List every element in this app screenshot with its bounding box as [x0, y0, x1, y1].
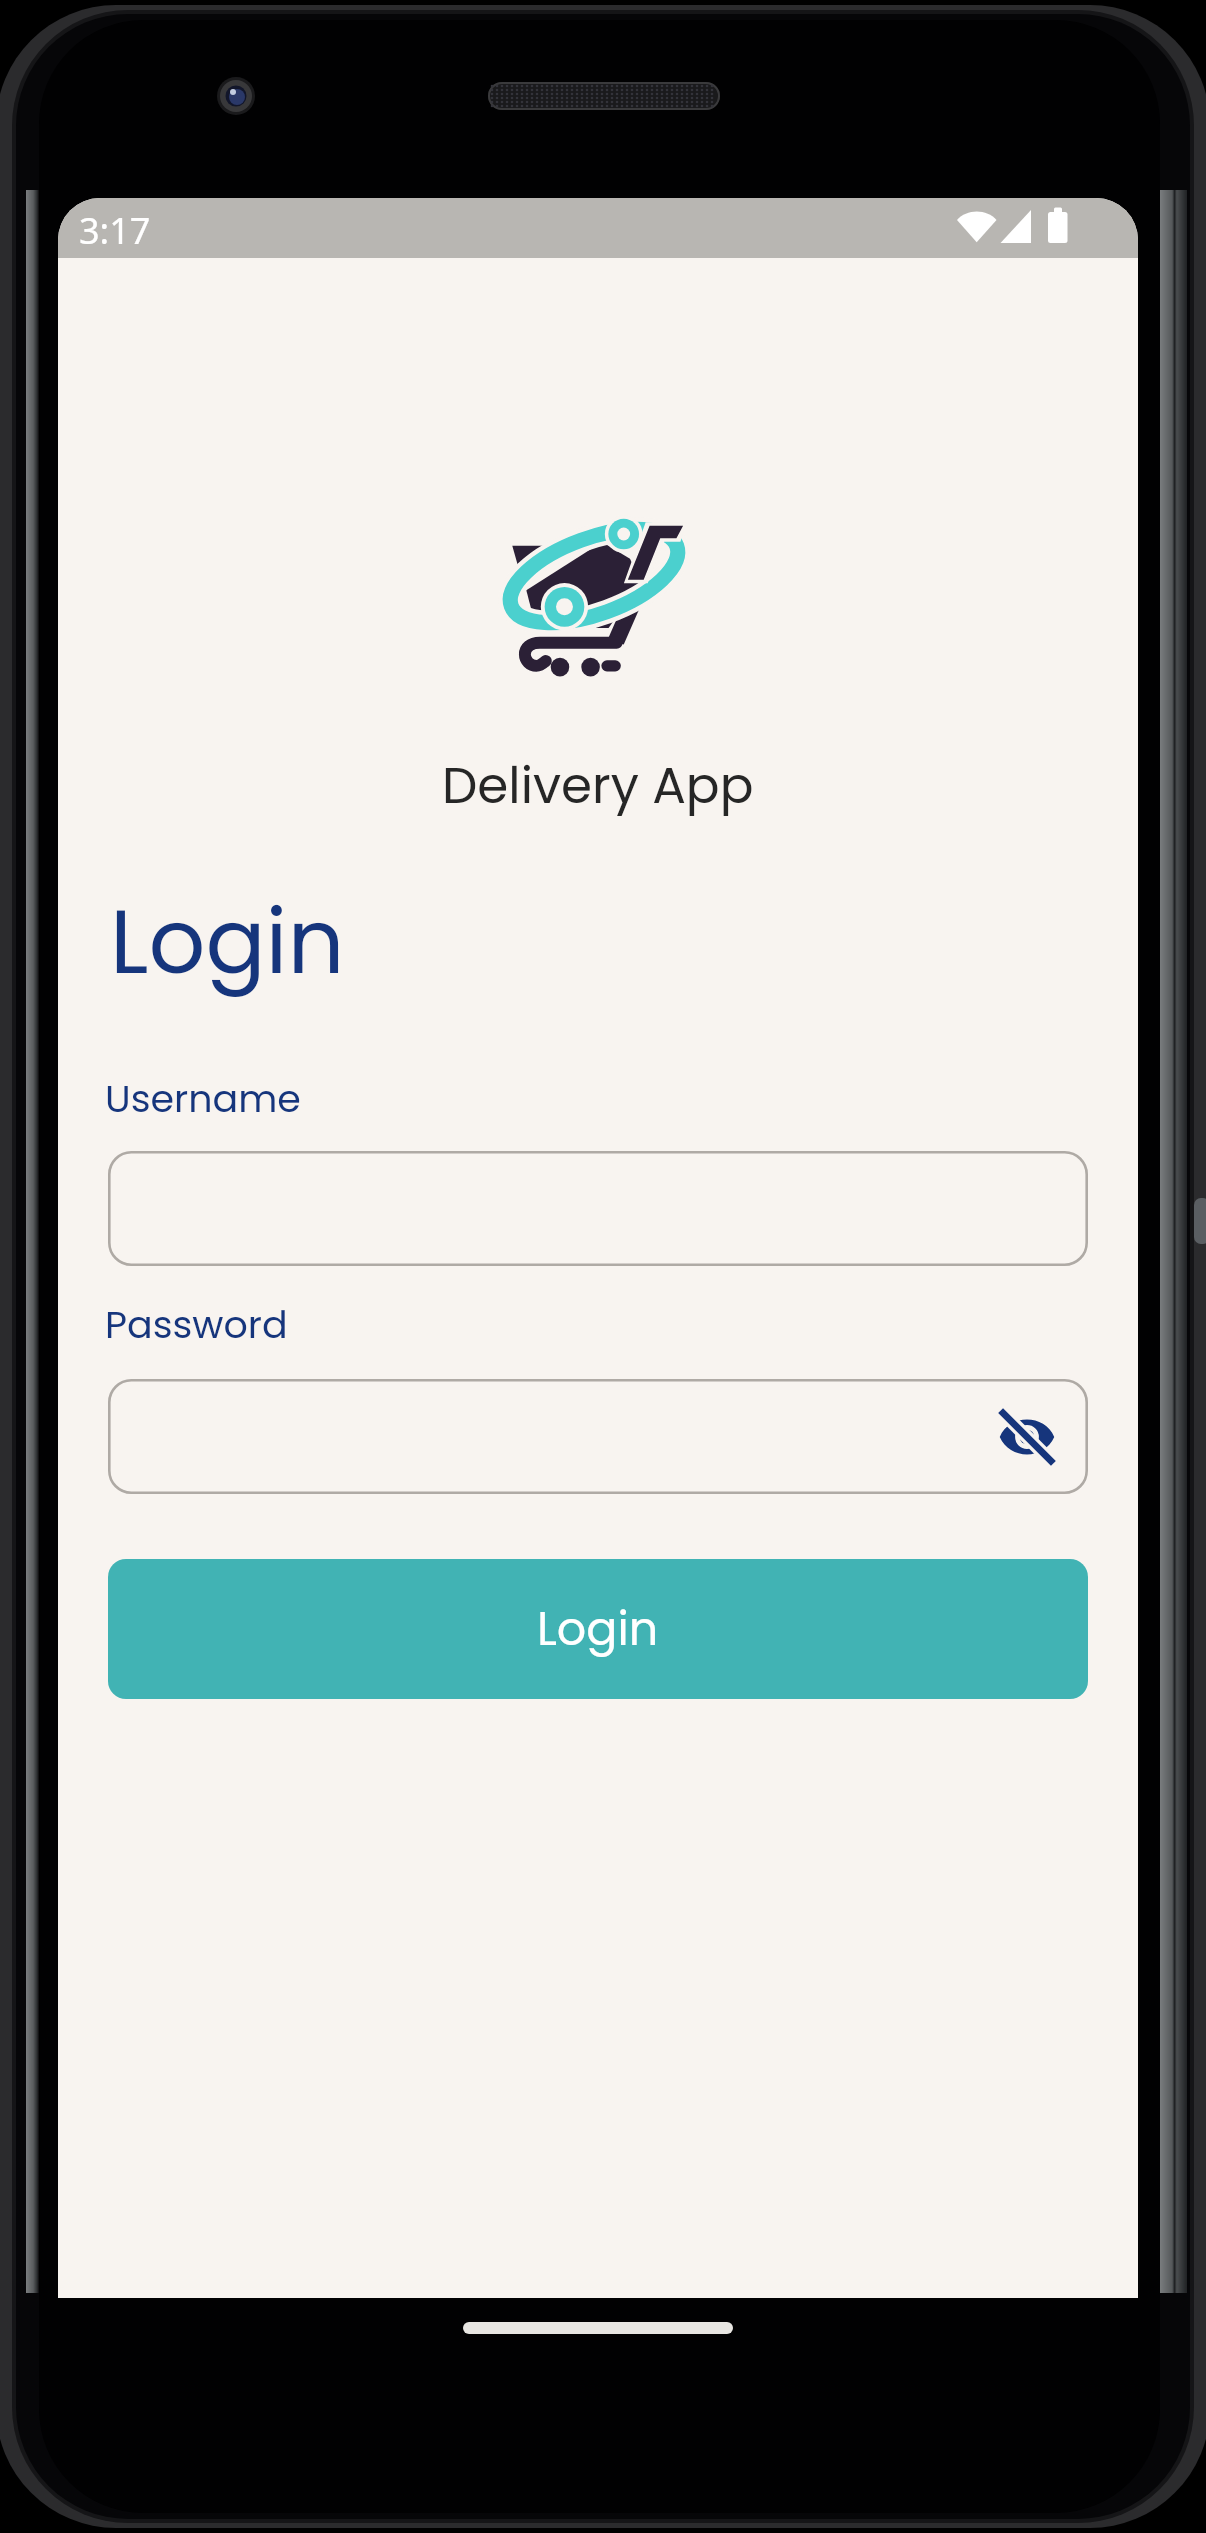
- staticText: Login: [110, 880, 345, 1005]
- button[interactable]: [108, 1151, 1088, 1266]
- button[interactable]: Login: [108, 1559, 1088, 1699]
- staticText: Login: [537, 1597, 659, 1661]
- button[interactable]: Toggle password visibility: [108, 1379, 1088, 1494]
- staticText: Password: [105, 1298, 288, 1351]
- staticText: Username: [105, 1072, 301, 1125]
- staticText: Delivery App: [442, 751, 754, 821]
- staticText: 3:17: [79, 206, 151, 255]
- button[interactable]: Toggle password visibility: [996, 1406, 1058, 1468]
